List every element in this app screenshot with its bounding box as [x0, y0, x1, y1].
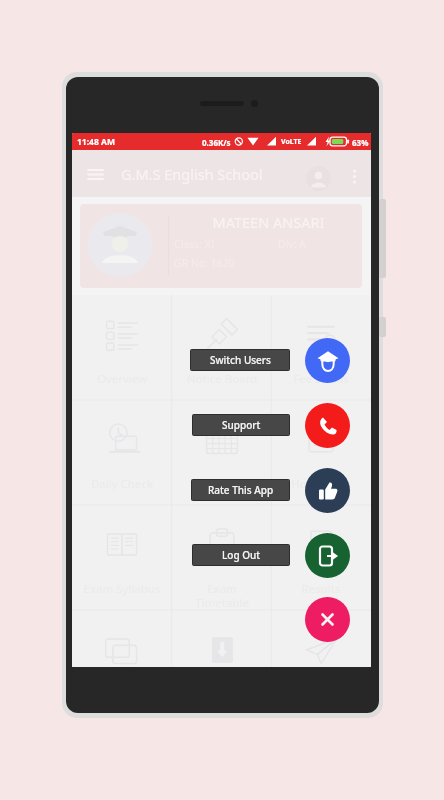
- button[interactable]: Log Out: [305, 533, 350, 578]
- button[interactable]: Notice Board: [172, 295, 272, 400]
- button[interactable]: Fee Status: [271, 295, 371, 400]
- button[interactable]: Homework: [271, 400, 371, 505]
- staticText: Log Out: [222, 548, 261, 562]
- button[interactable]: Rate This App: [192, 480, 289, 500]
- staticText: 0.36K/s: [202, 137, 231, 148]
- staticText: 11:48 AM: [77, 136, 115, 148]
- button[interactable]: MATEEN ANSARI: [80, 204, 362, 288]
- staticText: Rate This App: [208, 483, 274, 497]
- button[interactable]: Switch Users: [191, 350, 289, 370]
- button[interactable]: Close menu: [305, 597, 350, 642]
- staticText: Homework: [273, 476, 369, 492]
- staticText: G.M.S English School: [121, 164, 263, 184]
- staticText: VoLTE: [281, 137, 302, 147]
- button[interactable]: Downloads: [172, 610, 272, 667]
- button[interactable]: Results: [271, 505, 371, 610]
- button[interactable]: Rate This App: [305, 468, 350, 513]
- staticText: Switch Users: [210, 353, 271, 367]
- button[interactable]: Open navigation menu: [82, 161, 108, 187]
- button[interactable]: Calendar: [172, 400, 272, 505]
- button[interactable]: Support: [305, 403, 350, 448]
- staticText: MATEEN ANSARI: [176, 212, 361, 232]
- staticText: 63%: [352, 137, 369, 148]
- button[interactable]: Activity: [271, 610, 371, 667]
- button[interactable]: Exam Timetable: [172, 505, 272, 610]
- button[interactable]: Account: [306, 166, 331, 191]
- staticText: Fee Status: [273, 371, 369, 387]
- staticText: Calendar: [174, 476, 270, 492]
- button[interactable]: Switch Users: [305, 338, 350, 383]
- button[interactable]: Support: [193, 415, 289, 435]
- button[interactable]: Log Out: [193, 545, 289, 565]
- staticText: Support: [222, 418, 261, 432]
